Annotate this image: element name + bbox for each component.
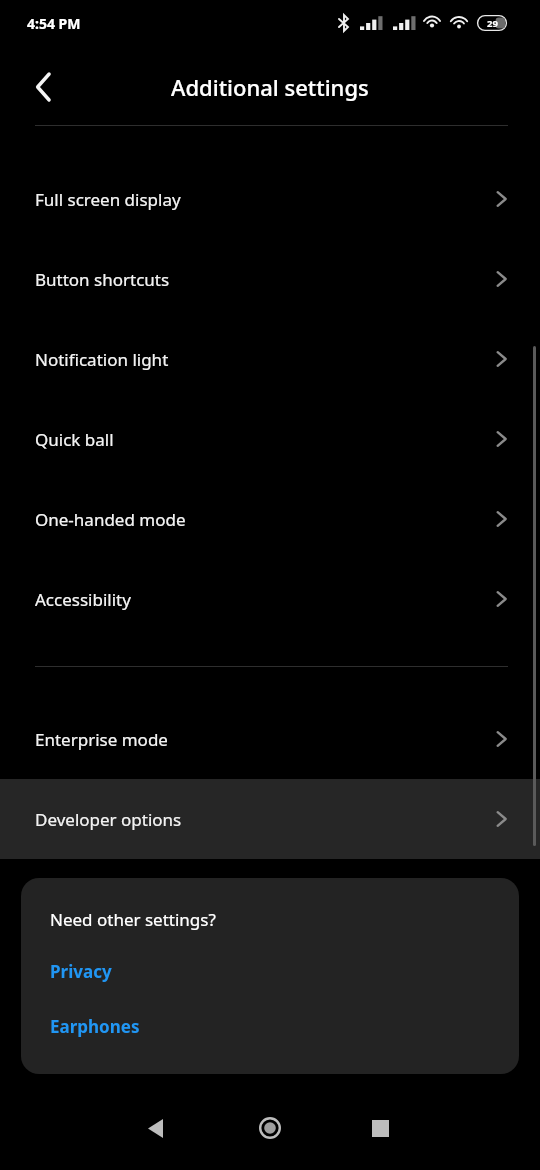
staticText: Full screen display	[35, 188, 181, 211]
staticText: Enterprise mode	[35, 728, 168, 751]
staticText: 29	[487, 17, 498, 30]
staticText: 4:54 PM	[27, 14, 81, 33]
staticText: Button shortcuts	[35, 268, 170, 291]
button[interactable]: Developer options	[0, 779, 540, 859]
button[interactable]: Notification light	[0, 319, 540, 399]
button[interactable]: Back	[20, 63, 68, 111]
staticText: Notification light	[35, 348, 169, 371]
staticText: Accessibility	[35, 588, 131, 611]
button[interactable]: One-handed mode	[0, 479, 540, 559]
button[interactable]: Enterprise mode	[0, 699, 540, 779]
button[interactable]: Accessibility	[0, 559, 540, 639]
staticText: Additional settings	[171, 72, 369, 102]
staticText: One-handed mode	[35, 508, 186, 531]
button[interactable]: Quick ball	[0, 399, 540, 479]
staticText: Earphones	[50, 1015, 140, 1038]
button[interactable]: Button shortcuts	[0, 239, 540, 319]
button[interactable]: Back	[131, 1104, 179, 1152]
button[interactable]: Privacy	[21, 954, 519, 989]
staticText: Developer options	[35, 808, 182, 831]
staticText: Quick ball	[35, 428, 114, 451]
button[interactable]: Home	[246, 1104, 294, 1152]
button[interactable]: Recent apps	[356, 1104, 404, 1152]
button[interactable]: Earphones	[21, 1009, 519, 1044]
staticText: Need other settings?	[50, 908, 216, 931]
button[interactable]: Full screen display	[0, 159, 540, 239]
staticText: Privacy	[50, 960, 112, 983]
